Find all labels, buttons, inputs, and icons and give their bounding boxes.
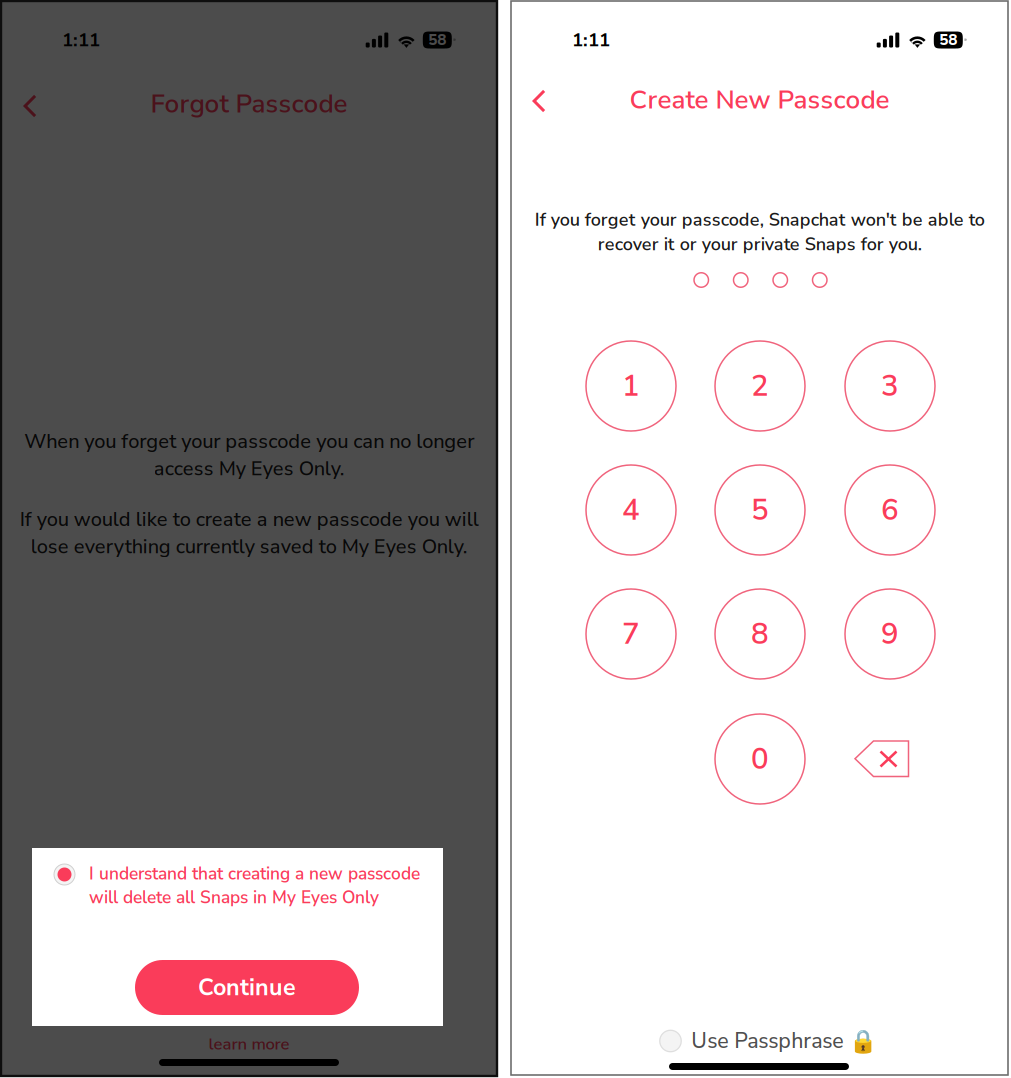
button[interactable]: 4 bbox=[586, 465, 676, 555]
staticText: 1 bbox=[622, 366, 640, 406]
button[interactable]: Use Passphrase bbox=[520, 1025, 1011, 1057]
staticText: 4 bbox=[622, 490, 640, 530]
button[interactable]: 8 bbox=[715, 589, 805, 679]
staticText: If you would like to create a new passco… bbox=[19, 506, 478, 560]
button[interactable]: Back bbox=[532, 89, 545, 113]
staticText: Forgot Passcode bbox=[150, 86, 347, 122]
staticText: 5 bbox=[751, 490, 769, 530]
staticText: learn more bbox=[208, 1033, 289, 1055]
button[interactable]: Continue bbox=[135, 960, 359, 1015]
button[interactable]: Back bbox=[23, 94, 36, 118]
button[interactable]: 9 bbox=[845, 589, 935, 679]
button[interactable]: I understand that creating a new passcod… bbox=[32, 848, 439, 909]
staticText: 1:11 bbox=[62, 27, 100, 53]
staticText: 1:11 bbox=[572, 27, 610, 53]
staticText: 3 bbox=[881, 366, 899, 406]
staticText: 58 bbox=[939, 29, 957, 50]
button[interactable]: 6 bbox=[845, 465, 935, 555]
button[interactable]: 3 bbox=[845, 341, 935, 431]
staticText: 9 bbox=[881, 614, 899, 654]
button[interactable]: 7 bbox=[586, 589, 676, 679]
staticText: If you forget your passcode, Snapchat wo… bbox=[534, 207, 984, 256]
staticText: 2 bbox=[751, 366, 769, 406]
staticText: 6 bbox=[881, 490, 899, 530]
staticText: When you forget your passcode you can no… bbox=[24, 428, 474, 482]
button[interactable]: 5 bbox=[715, 465, 805, 555]
staticText: Create New Passcode bbox=[629, 82, 889, 118]
staticText: 8 bbox=[751, 614, 769, 654]
staticText: I understand that creating a new passcod… bbox=[89, 862, 420, 909]
staticText: 58 bbox=[428, 29, 446, 50]
staticText: 0 bbox=[751, 739, 769, 779]
staticText: Use Passphrase bbox=[691, 1026, 843, 1056]
button[interactable]: 1 bbox=[586, 341, 676, 431]
button[interactable]: learn more bbox=[1, 1033, 497, 1055]
staticText: 7 bbox=[622, 614, 640, 654]
button[interactable]: Delete bbox=[854, 740, 910, 778]
button[interactable]: 2 bbox=[715, 341, 805, 431]
staticText: 🔒 bbox=[849, 1028, 877, 1054]
button[interactable]: 0 bbox=[715, 714, 805, 804]
staticText: Continue bbox=[198, 972, 296, 1003]
